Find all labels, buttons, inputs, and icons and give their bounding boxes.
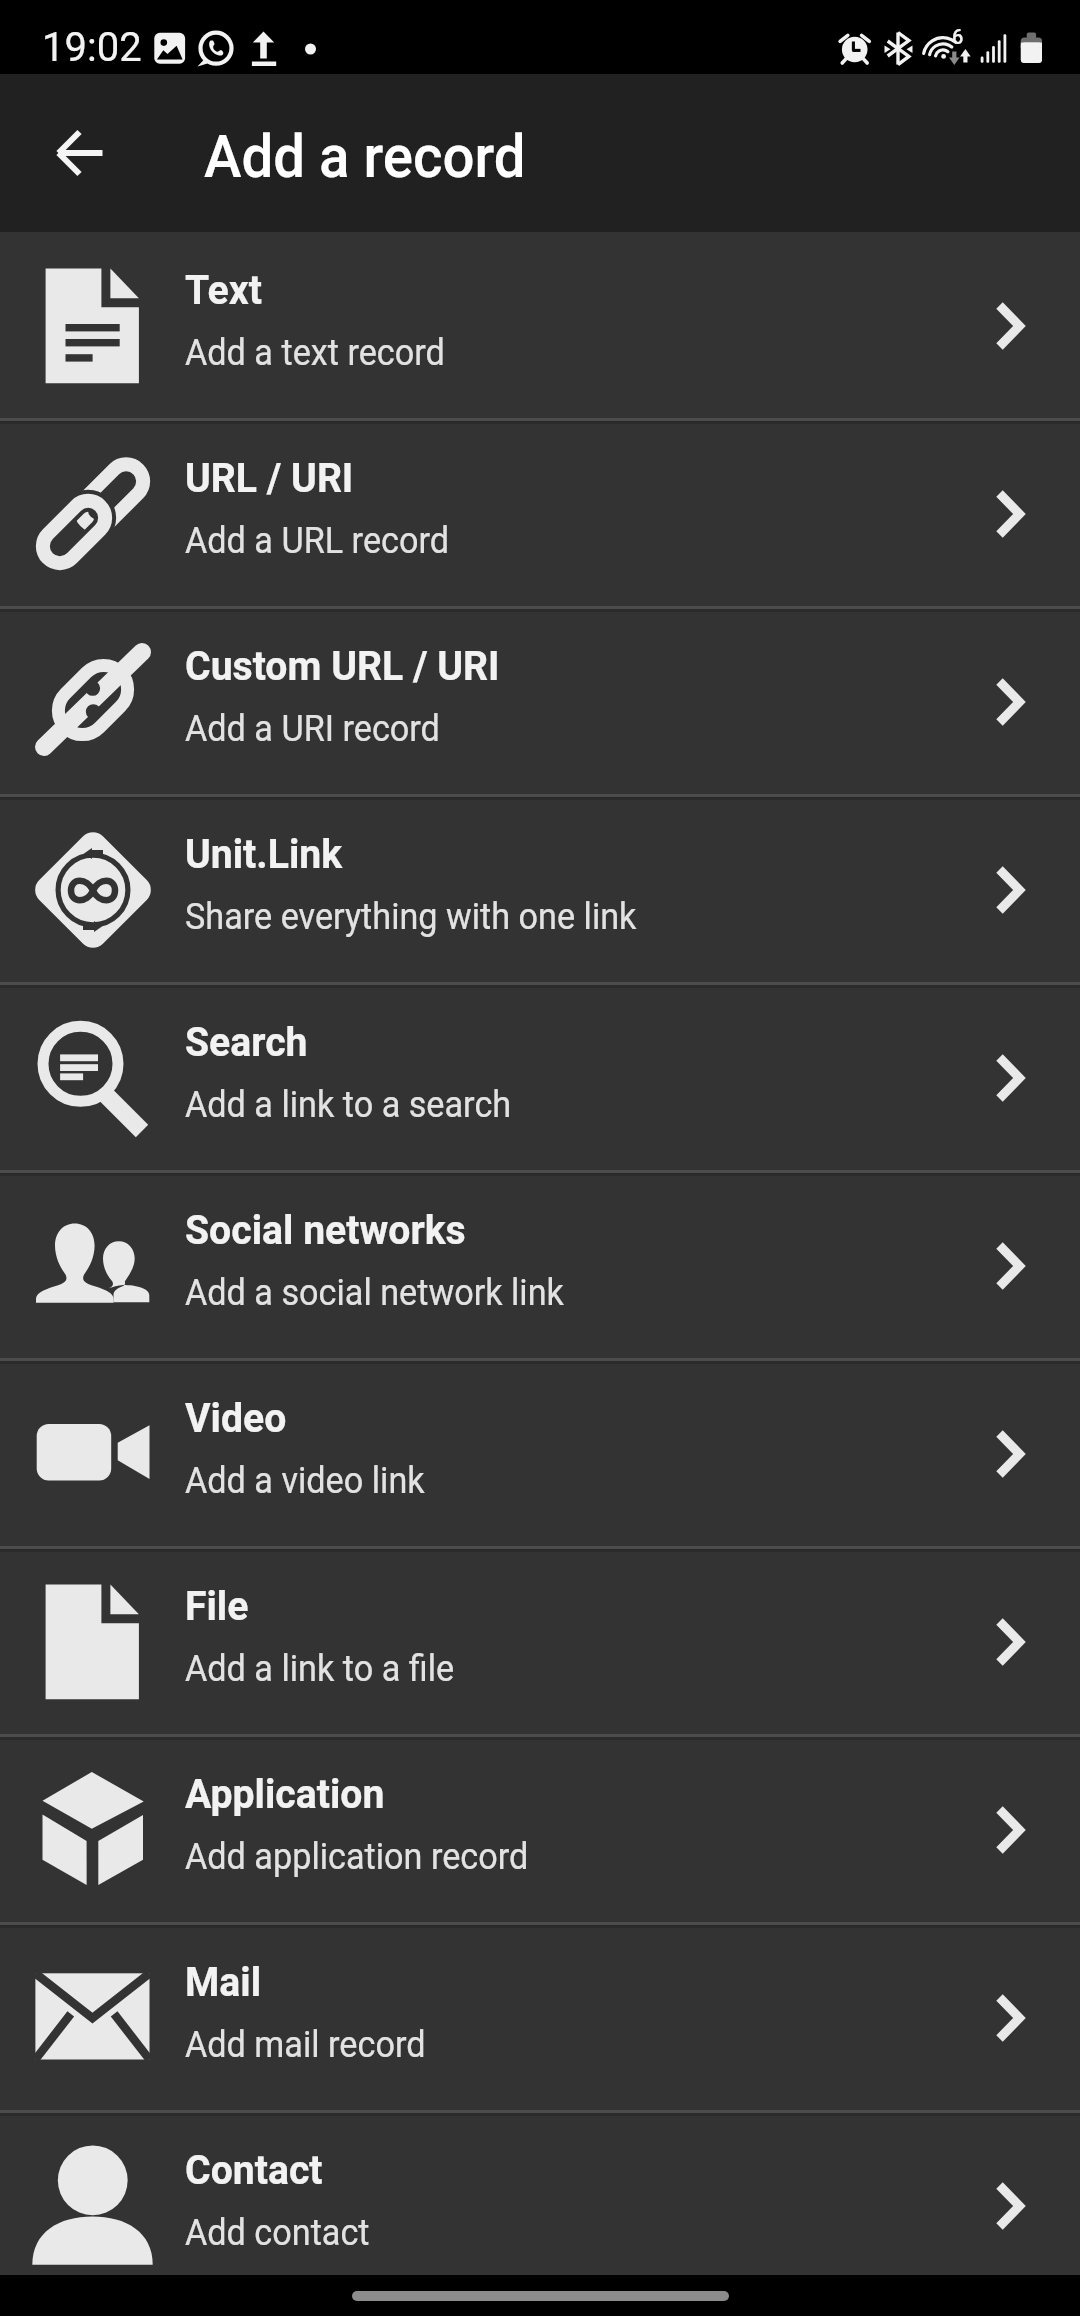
staticText: Add application record (185, 1836, 529, 1878)
button[interactable]: Social networks (0, 1172, 1080, 1360)
staticText: Add a social network link (185, 1272, 564, 1314)
button[interactable]: Search (0, 984, 1080, 1172)
staticText: Add a URI record (185, 708, 440, 750)
staticText: Video (185, 1394, 287, 1442)
staticText: Unit.Link (185, 830, 343, 878)
button[interactable]: Unit.Link (0, 796, 1080, 984)
staticText: Custom URL / URI (185, 642, 500, 690)
staticText: Add a video link (185, 1460, 425, 1502)
button[interactable]: URL / URI (0, 420, 1080, 608)
staticText: Add contact (185, 2212, 370, 2254)
button[interactable]: Contact (0, 2112, 1080, 2275)
button[interactable]: File (0, 1548, 1080, 1736)
button[interactable]: Text (0, 232, 1080, 420)
staticText: Social networks (185, 1206, 466, 1254)
button[interactable]: Custom URL / URI (0, 608, 1080, 796)
staticText: URL / URI (185, 454, 354, 502)
staticText: Application (185, 1770, 385, 1818)
button[interactable]: Back (0, 74, 160, 232)
staticText: Add mail record (185, 2024, 426, 2066)
staticText: Mail (185, 1958, 261, 2006)
staticText: 6 (952, 25, 963, 50)
button[interactable]: Mail (0, 1924, 1080, 2112)
staticText: Search (185, 1018, 308, 1066)
staticText: Share everything with one link (185, 896, 637, 938)
button[interactable]: Video (0, 1360, 1080, 1548)
staticText: Add a link to a search (185, 1084, 512, 1126)
staticText: Text (185, 266, 262, 314)
staticText: 19:02 (42, 24, 142, 71)
staticText: Add a URL record (185, 520, 449, 562)
button[interactable]: Application (0, 1736, 1080, 1924)
staticText: File (185, 1582, 249, 1630)
staticText: Add a link to a file (185, 1648, 455, 1690)
staticText: Add a text record (185, 332, 445, 374)
staticText: Add a record (204, 122, 526, 191)
staticText: Contact (185, 2146, 323, 2194)
